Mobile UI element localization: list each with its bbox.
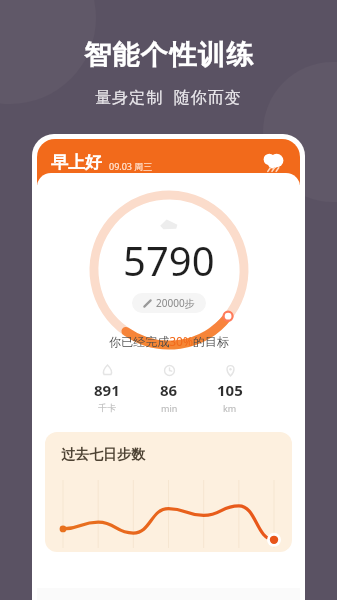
staticText: 量身定制 随你而变 [95, 86, 242, 108]
staticText: 86 [160, 380, 178, 400]
staticText: km [223, 402, 237, 414]
button[interactable]: 过去七日步数 [45, 432, 292, 552]
button[interactable]: Weather [260, 149, 286, 175]
staticText: 你已经完成30%的目标 [109, 333, 229, 349]
staticText: 早上好 [51, 152, 102, 173]
staticText: 智能个性训练 [83, 38, 254, 72]
staticText: 20000步 [156, 296, 195, 310]
staticText: 105 [217, 380, 243, 400]
staticText: min [161, 402, 178, 414]
staticText: 09.03 周三 [109, 160, 153, 172]
staticText: 891 [94, 380, 120, 400]
staticText: 过去七日步数 [61, 446, 145, 464]
button[interactable]: 20000步 [132, 293, 206, 313]
staticText: 千卡 [98, 402, 116, 413]
staticText: 5790 [123, 233, 215, 287]
